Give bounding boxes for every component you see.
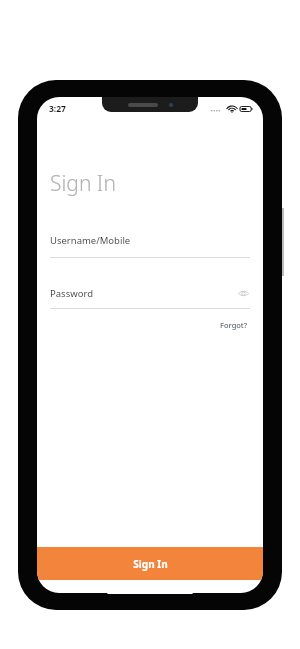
staticText: Forgot? [220, 320, 248, 330]
button[interactable]: Sign In [37, 547, 263, 580]
staticText: Sign In [133, 557, 168, 571]
staticText: 3:27 [49, 103, 66, 115]
staticText: Password [50, 287, 93, 300]
staticText: Sign In [50, 169, 116, 198]
button[interactable]: Password [50, 286, 250, 309]
button[interactable]: Forgot? [218, 318, 250, 332]
staticText: Username/Mobile [50, 234, 131, 247]
button[interactable]: Username/Mobile [50, 234, 250, 258]
button[interactable]: Show password [236, 286, 250, 300]
